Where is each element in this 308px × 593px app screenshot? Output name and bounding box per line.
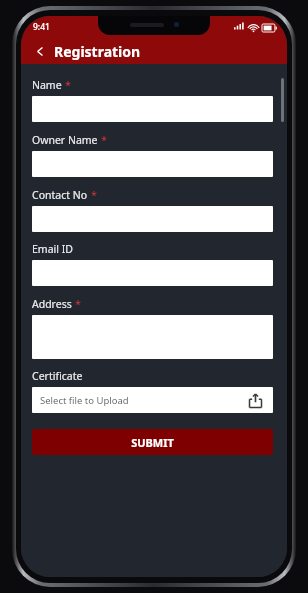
staticText: * [101, 132, 108, 147]
staticText: Contact No [32, 188, 88, 202]
button[interactable]: Select file to Upload [245, 390, 265, 410]
staticText: Select file to Upload [40, 394, 129, 407]
button[interactable]: Back [31, 42, 49, 60]
staticText: 9:41 [33, 21, 50, 33]
staticText: Owner Name [32, 133, 98, 147]
staticText: * [65, 77, 72, 92]
staticText: * [91, 187, 98, 202]
staticText: Name [32, 78, 62, 92]
staticText: Email ID [32, 242, 73, 256]
button[interactable]: SUBMIT [32, 429, 273, 455]
staticText: Address [32, 297, 72, 311]
staticText: * [75, 296, 82, 311]
staticText: SUBMIT [131, 435, 174, 450]
staticText: Certificate [32, 369, 83, 383]
button[interactable]: Select file to Upload [32, 387, 273, 413]
staticText: Registration [54, 42, 141, 61]
